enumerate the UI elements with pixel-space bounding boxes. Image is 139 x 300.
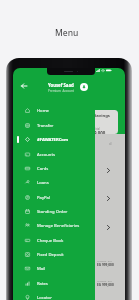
staticText: Menu [55,27,79,39]
button[interactable]: Open account [95,156,125,184]
staticText: Cheque Book [37,238,64,244]
button[interactable]: Transfer [13,118,125,133]
button[interactable]: Accounts [13,147,125,162]
staticText: Account p/a [97,259,112,262]
button[interactable]: Cards [13,161,125,176]
button[interactable]: PayPal [13,190,125,205]
staticText: Account p/a [97,279,112,282]
button[interactable]: Standing Order [13,204,125,219]
staticText: Standing Order [37,209,68,215]
button[interactable]: Home [13,103,125,118]
button[interactable]: Open account [95,213,125,241]
staticText: all [109,142,112,146]
button[interactable]: #FAWATERCom [13,132,125,147]
button[interactable]: Locator [13,290,125,300]
staticText: Locator [37,295,52,300]
staticText: Rates [37,281,48,287]
staticText: EG 999,000 [97,263,114,267]
button[interactable]: Open account [95,184,125,212]
staticText: Mail [37,266,46,272]
staticText: Fixed Deposit [37,252,64,258]
button[interactable]: Manage Beneficiaries [13,218,125,233]
button[interactable]: Rates [13,276,125,291]
button[interactable]: Cheque Book [13,233,125,248]
staticText: Manage Beneficiaries [37,223,80,229]
button[interactable]: Mail [13,261,125,276]
staticText: Home [37,108,49,114]
staticText: Accounts [37,152,55,158]
staticText: PayPal [37,195,50,201]
staticText: Total [95,127,100,131]
staticText: EG 999,000 [97,283,114,287]
button[interactable]: Profile [80,83,88,91]
staticText: Yousef Saad [48,82,74,88]
staticText: Premium Account [48,89,74,93]
staticText: 9,000 [95,130,106,134]
staticText: Loans [37,180,49,186]
staticText: Transfer [37,123,54,129]
staticText: Cards [37,166,49,172]
button[interactable]: Back [18,80,30,92]
button[interactable]: Loans [13,175,125,190]
staticText: #FAWATERCom [37,137,69,143]
staticText: Savings [95,113,110,119]
button[interactable]: Fixed Deposit [13,247,125,262]
